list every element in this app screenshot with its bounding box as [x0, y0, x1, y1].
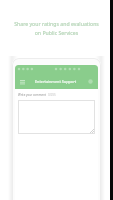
staticText: Share your ratings and evaluations on Pu…	[14, 20, 99, 37]
button[interactable]: Menu	[18, 77, 27, 86]
button[interactable]: More options	[86, 77, 95, 86]
staticText: Write your comment	[18, 93, 46, 97]
staticText: 0/255	[48, 93, 56, 97]
button[interactable]	[18, 100, 95, 134]
staticText: Entertainment Support	[35, 79, 77, 84]
